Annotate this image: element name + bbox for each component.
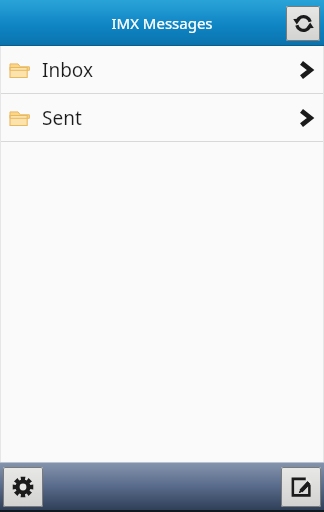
button[interactable]: Settings [3,467,43,507]
staticText: Sent [42,105,82,131]
staticText: Inbox [42,57,94,83]
button[interactable]: Inbox [0,46,324,93]
staticText: IMX Messages [0,13,324,33]
button[interactable]: Compose message [281,467,321,507]
button[interactable]: Refresh [286,6,320,41]
button[interactable]: Sent [0,94,324,141]
